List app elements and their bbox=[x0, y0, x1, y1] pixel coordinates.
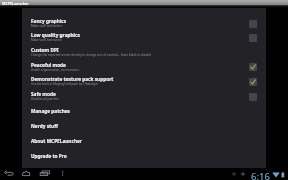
button[interactable]: Menu bbox=[59, 170, 67, 179]
other: Notification bbox=[231, 171, 237, 177]
button[interactable]: Enabled bbox=[249, 63, 257, 71]
staticText: Nerdy stuff bbox=[31, 123, 58, 129]
other: Battery bbox=[280, 171, 286, 178]
button[interactable]: Demonstrate texture pack support bbox=[22, 76, 266, 91]
staticText: MCPELauncher bbox=[2, 1, 29, 6]
button[interactable]: Safe mode bbox=[22, 91, 266, 108]
staticText: Low quality graphics bbox=[31, 32, 80, 38]
staticText: Peaceful mode bbox=[31, 62, 66, 68]
staticText: Safe mode bbox=[31, 91, 56, 97]
other: Notification bbox=[240, 171, 246, 177]
button[interactable]: Custom DPI bbox=[22, 47, 266, 63]
button[interactable]: Peaceful mode bbox=[22, 62, 266, 76]
button[interactable]: Low quality graphics bbox=[22, 32, 266, 47]
staticText: 6:16 bbox=[251, 170, 270, 180]
button[interactable]: Home bbox=[21, 170, 33, 179]
staticText: About MCPELauncher bbox=[31, 138, 82, 144]
staticText: Manage patches bbox=[31, 108, 70, 114]
staticText: Custom DPI bbox=[31, 47, 59, 53]
staticText: Health regeneration, no monsters bbox=[31, 68, 79, 72]
button[interactable]: Enabled bbox=[249, 78, 257, 86]
button[interactable]: Upgrade to Pro bbox=[22, 153, 266, 168]
button[interactable]: About MCPELauncher bbox=[22, 138, 266, 153]
staticText: Upgrade to Pro bbox=[31, 153, 67, 159]
staticText: Demonstrate texture pack support bbox=[31, 76, 114, 82]
staticText: Fancy graphics bbox=[31, 18, 67, 24]
staticText: Make stuff look better bbox=[31, 24, 63, 28]
button[interactable]: Manage patches bbox=[22, 108, 266, 123]
staticText: Make stuff look worse bbox=[31, 38, 63, 42]
button[interactable]: Fancy graphics bbox=[22, 18, 266, 32]
button[interactable]: Nerdy stuff bbox=[22, 123, 266, 138]
button[interactable]: Back bbox=[3, 170, 15, 179]
staticText: Use the built-in MojangCraft pack by The… bbox=[31, 82, 98, 86]
staticText: Change the reported screen density to ch… bbox=[31, 53, 152, 57]
staticText: Disables all patches bbox=[31, 97, 59, 101]
other: Wifi signal bbox=[272, 171, 280, 178]
button[interactable]: Recent apps bbox=[39, 170, 52, 179]
